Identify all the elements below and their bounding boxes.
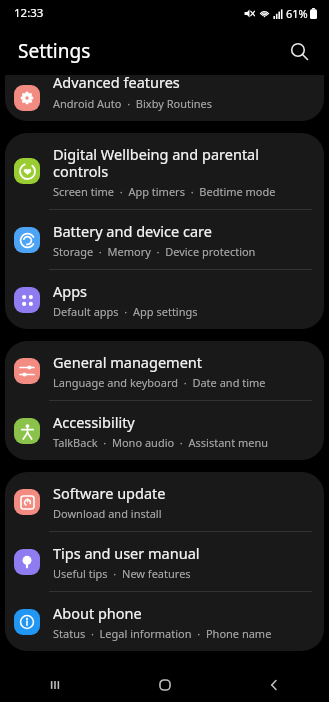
staticText: Language and keyboard · Date and time [53, 375, 266, 390]
button[interactable]: Back [252, 668, 296, 702]
staticText: Default apps · App settings [53, 304, 198, 319]
staticText: Accessibility [53, 412, 135, 432]
staticText: Settings [18, 38, 91, 64]
staticText: General management [53, 352, 203, 372]
button[interactable]: General management [5, 341, 324, 400]
staticText: Advanced features [53, 75, 180, 92]
staticText: Useful tips · New features [53, 566, 191, 581]
button[interactable]: Recents [33, 668, 77, 702]
button[interactable]: Software update [5, 472, 324, 531]
staticText: Download and install [53, 506, 162, 521]
button[interactable]: Home [143, 668, 187, 702]
button[interactable]: Advanced features [5, 75, 324, 121]
staticText: Screen time · App timers · Bedtime mode [53, 184, 276, 199]
staticText: Software update [53, 483, 166, 503]
staticText: About phone [53, 603, 142, 623]
staticText: Status · Legal information · Phone name [53, 626, 272, 641]
staticText: Apps [53, 281, 88, 301]
button[interactable]: About phone [5, 592, 324, 651]
button[interactable]: Search [279, 31, 319, 71]
button[interactable]: Tips and user manual [5, 532, 324, 591]
staticText: Battery and device care [53, 221, 212, 241]
staticText: Storage · Memory · Device protection [53, 244, 256, 259]
staticText: Tips and user manual [53, 543, 200, 563]
staticText: Digital Wellbeing and parental controls [53, 144, 259, 181]
button[interactable]: Accessibility [5, 401, 324, 460]
button[interactable]: Battery and device care [5, 210, 324, 269]
staticText: 12:33 [14, 5, 44, 21]
staticText: Android Auto · Bixby Routines [53, 96, 213, 111]
button[interactable]: Digital Wellbeing and parental controls [5, 133, 324, 209]
button[interactable]: Apps [5, 270, 324, 329]
staticText: TalkBack · Mono audio · Assistant menu [53, 435, 269, 450]
staticText: 61% [286, 6, 308, 21]
